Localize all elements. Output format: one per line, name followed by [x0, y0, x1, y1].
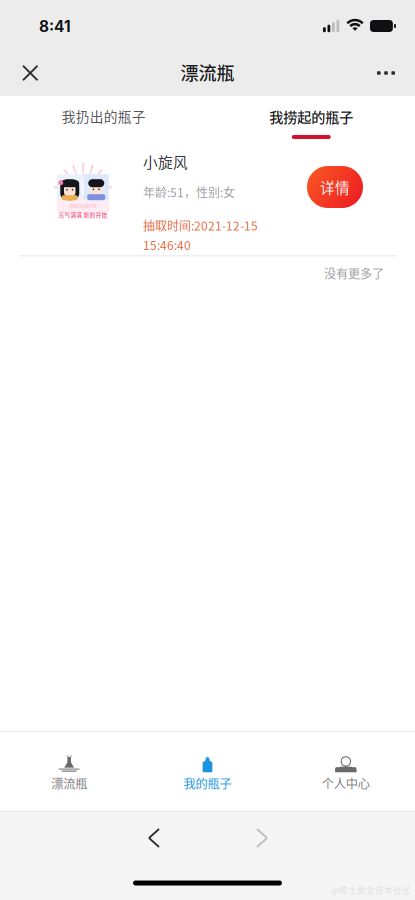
- staticText: 我扔出的瓶子: [62, 106, 146, 126]
- staticText: 抽取时间:2021-12-15: [143, 217, 258, 234]
- button[interactable]: Back: [127, 813, 181, 863]
- staticText: 年龄:51，性别:女: [143, 183, 235, 201]
- staticText: 勇敢的你最可爱: [69, 203, 97, 209]
- staticText: 8:41: [39, 17, 71, 36]
- button[interactable]: 详情: [307, 166, 363, 208]
- button[interactable]: Close: [0, 49, 55, 95]
- button[interactable]: 我捞起的瓶子: [207, 96, 415, 146]
- staticText: 详情: [320, 176, 350, 198]
- staticText: 小旋风: [143, 151, 188, 172]
- staticText: 我的瓶子: [183, 774, 231, 792]
- staticText: 漂流瓶: [51, 774, 87, 792]
- staticText: 元气满满 新的开始: [58, 211, 107, 219]
- button[interactable]: More: [358, 49, 415, 95]
- staticText: 没有更多了: [324, 264, 384, 282]
- staticText: 个人中心: [322, 774, 370, 792]
- staticText: 漂流瓶: [180, 59, 234, 85]
- button[interactable]: 我扔出的瓶子: [0, 96, 207, 146]
- staticText: 15:46:40: [143, 236, 191, 253]
- staticText: 我捞起的瓶子: [269, 106, 353, 126]
- staticText: @稀土掘金技术社区: [331, 884, 411, 896]
- button[interactable]: 漂流瓶: [0, 732, 138, 811]
- button[interactable]: Forward: [235, 813, 289, 863]
- button[interactable]: 个人中心: [277, 732, 415, 811]
- button[interactable]: 我的瓶子: [138, 732, 277, 811]
